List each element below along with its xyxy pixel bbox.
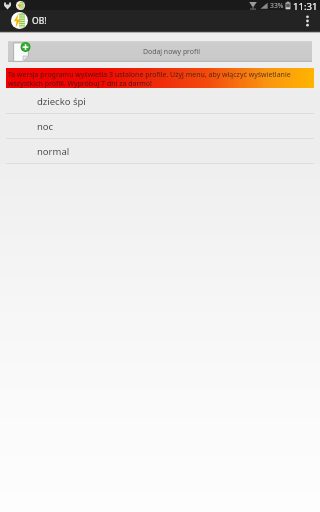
staticText: 11:31 — [293, 0, 318, 10]
staticText: Dodaj nowy profil — [143, 47, 200, 56]
button[interactable]: normal — [0, 139, 320, 164]
staticText: Ta wersja programu wyświetla 3 ustalone … — [8, 70, 312, 88]
button[interactable]: More options — [294, 10, 320, 31]
staticText: 33% — [270, 1, 284, 10]
button[interactable]: Ta wersja programu wyświetla 3 ustalone … — [6, 68, 314, 88]
staticText: noc — [37, 120, 54, 133]
staticText: dziecko śpi — [37, 95, 86, 108]
staticText: OB! — [32, 15, 47, 27]
button[interactable]: Dodaj nowy profil — [8, 41, 312, 62]
button[interactable]: dziecko śpi — [0, 89, 320, 114]
button[interactable]: noc — [0, 114, 320, 139]
staticText: normal — [37, 145, 70, 158]
